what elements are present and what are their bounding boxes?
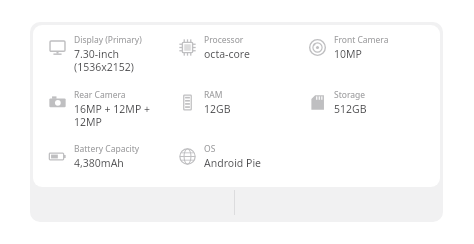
button[interactable]: Rear camera <box>46 89 176 129</box>
staticText: Rear Camera <box>74 89 126 101</box>
staticText: Android Pie <box>204 156 262 170</box>
staticText: octa-core <box>204 47 250 61</box>
staticText: 512GB <box>334 102 367 116</box>
staticText: Battery Capacity <box>74 143 140 155</box>
button[interactable]: Display <box>46 34 176 74</box>
button[interactable]: Battery capacity <box>46 143 176 170</box>
staticText: Processor <box>204 34 244 46</box>
other: Display <box>46 36 68 58</box>
staticText: 7.30-inch (1536x2152) <box>74 47 134 74</box>
button[interactable]: RAM <box>176 89 306 116</box>
staticText: RAM <box>204 89 223 101</box>
other: Storage <box>306 91 328 113</box>
staticText: 4,380mAh <box>74 156 124 170</box>
staticText: Storage <box>334 89 366 101</box>
staticText: 10MP <box>334 47 362 61</box>
other: Rear camera <box>46 91 68 113</box>
other: RAM <box>176 91 198 113</box>
staticText: Display (Primary) <box>74 34 142 46</box>
staticText: Front Camera <box>334 34 389 46</box>
staticText: 16MP + 12MP + 12MP <box>74 102 150 129</box>
staticText: 12GB <box>204 102 231 116</box>
button[interactable]: Storage <box>306 89 434 116</box>
staticText: OS <box>204 143 216 155</box>
other: Processor <box>176 36 198 58</box>
other: Operating system <box>176 145 198 167</box>
button[interactable]: Processor <box>176 34 306 61</box>
button[interactable]: Operating system <box>176 143 306 170</box>
button[interactable]: Front camera <box>306 34 434 61</box>
other: Battery capacity <box>46 145 68 167</box>
other: Front camera <box>306 36 328 58</box>
